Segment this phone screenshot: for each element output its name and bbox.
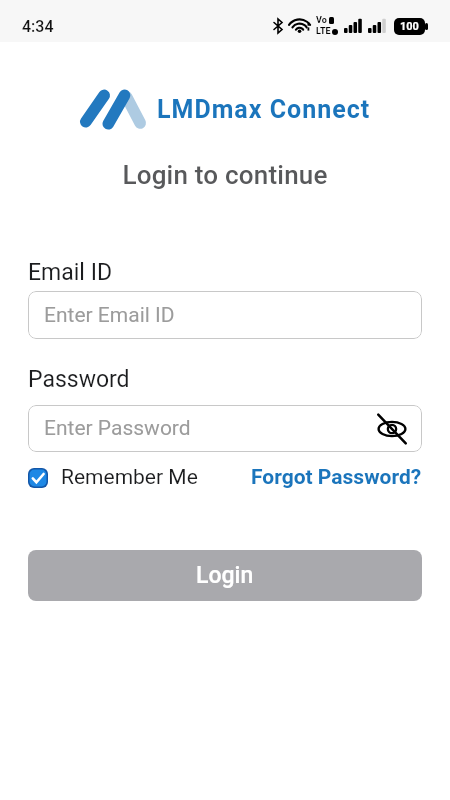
button[interactable]: Remember Me — [28, 465, 198, 490]
staticText: Remember Me — [61, 465, 198, 490]
button[interactable]: Forgot Password? — [251, 465, 422, 490]
staticText: LMDmax Connect — [157, 95, 371, 124]
staticText: Login to continue — [0, 160, 450, 190]
staticText: 4:34 — [22, 17, 54, 36]
button[interactable]: Enter Email ID — [28, 291, 422, 339]
button[interactable]: Enter Password — [28, 405, 422, 452]
staticText: Login — [196, 562, 254, 589]
staticText: Enter Email ID — [44, 303, 175, 328]
staticText: Email ID — [28, 259, 112, 286]
button[interactable] — [376, 413, 408, 445]
staticText: 100 — [400, 20, 419, 33]
staticText: LTE — [316, 26, 331, 37]
staticText: Vo — [316, 15, 327, 26]
staticText: Enter Password — [44, 416, 191, 441]
staticText: Password — [28, 366, 130, 393]
button[interactable]: Login — [28, 550, 422, 601]
